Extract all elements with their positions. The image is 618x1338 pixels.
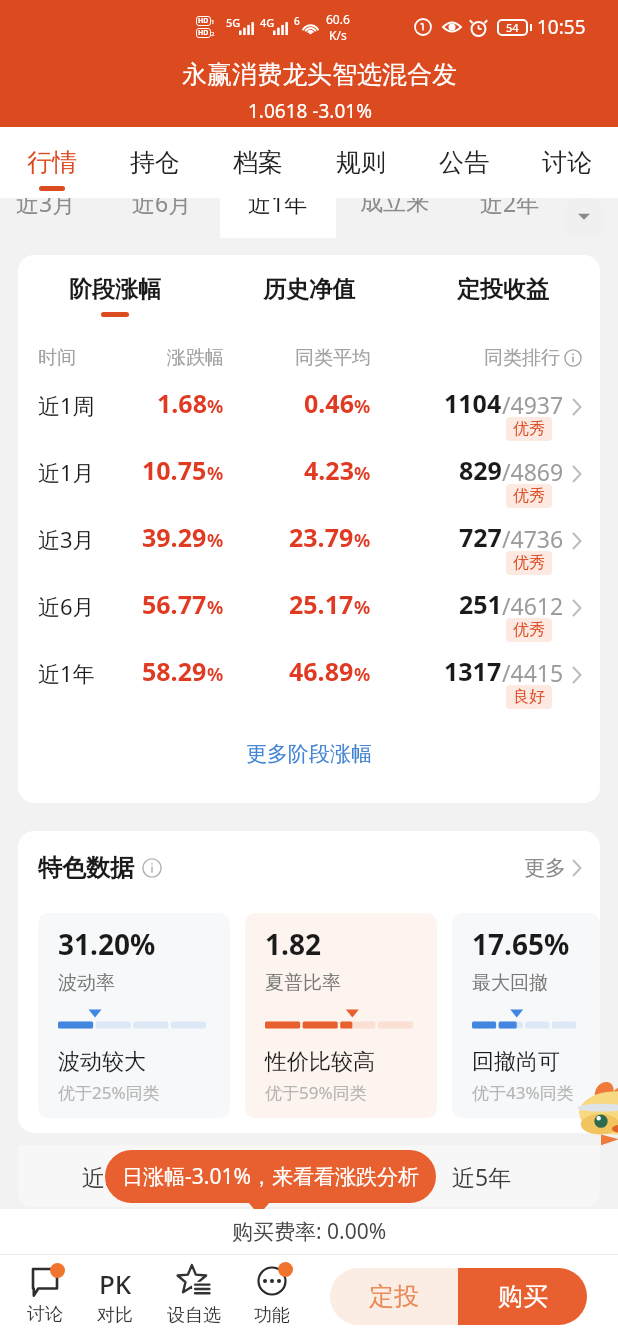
staticText: 近1年 (248, 187, 308, 218)
staticText: /4415 (502, 657, 564, 688)
staticText: 定投收益 (457, 275, 549, 304)
staticText: % (354, 595, 371, 620)
button[interactable]: 行情 (0, 127, 103, 198)
button[interactable]: 定投收益 (406, 275, 600, 317)
staticText: 优秀 (513, 620, 545, 640)
staticText: 公告 (439, 147, 489, 178)
staticText: 10.75 (142, 453, 207, 487)
staticText: 夏普比率 (265, 971, 341, 995)
button[interactable]: PK (77, 1254, 153, 1338)
staticText: 23.79 (289, 520, 354, 554)
staticText: /4937 (502, 389, 564, 420)
button[interactable]: 近3月 (0, 166, 104, 238)
button[interactable]: 日涨幅-3.01%，来看看涨跌分析 (105, 1150, 436, 1203)
button[interactable]: 近1年 (220, 166, 336, 238)
button[interactable]: 阶段涨幅 (18, 275, 212, 317)
staticText: 近4年 (210, 1161, 270, 1192)
staticText: 特色数据 (38, 853, 134, 883)
staticText: 波动率 (58, 971, 115, 995)
button[interactable]: Back (20, 123, 64, 167)
staticText: 时间 (38, 346, 128, 370)
button[interactable]: 近5年 (424, 1145, 540, 1207)
staticText: % (354, 662, 371, 687)
staticText: 涨跌幅 (128, 346, 224, 370)
button[interactable]: 讨论 (7, 1254, 83, 1338)
button[interactable]: 规则 (309, 127, 412, 198)
button[interactable]: 1.82 (245, 913, 437, 1118)
button[interactable]: 购买 (458, 1268, 587, 1325)
staticText: 近1年 (38, 658, 128, 688)
staticText: 1.68 (157, 386, 207, 420)
button[interactable]: 设自选 (156, 1254, 232, 1338)
staticText: 0.46 (304, 386, 354, 420)
staticText: 2 (211, 30, 215, 38)
button[interactable]: 历史净值 (212, 275, 406, 317)
button[interactable]: 近3月 (18, 509, 600, 576)
button[interactable]: 近2年 (452, 166, 568, 238)
button[interactable]: 公告 (412, 127, 515, 198)
staticText: % (207, 595, 224, 620)
button[interactable]: 近1年 (18, 643, 600, 710)
staticText: 近3年 (82, 1161, 142, 1192)
button[interactable]: 近1周 (18, 375, 600, 442)
staticText: 5G (226, 15, 241, 30)
button[interactable]: More ranges (562, 197, 606, 237)
staticText: 购买费率: 0.00% (232, 1217, 387, 1246)
button[interactable]: 成立来 (336, 166, 452, 238)
staticText: 1.0618 -3.01% (248, 98, 372, 124)
staticText: 4G (260, 15, 275, 30)
staticText: 历史净值 (263, 275, 355, 304)
button[interactable]: 讨论 (515, 127, 618, 198)
button[interactable]: 定投 (330, 1268, 458, 1325)
staticText: 行情 (27, 147, 77, 178)
staticText: 56.77 (142, 587, 207, 621)
staticText: 近1周 (38, 390, 128, 420)
staticText: 优于59%同类 (265, 1081, 367, 1104)
staticText: 54 (506, 20, 519, 35)
staticText: 持仓 (130, 147, 180, 178)
staticText: 727 (459, 520, 502, 554)
staticText: 性价比较高 (265, 1048, 375, 1076)
staticText: /4736 (502, 523, 564, 554)
staticText: /4869 (502, 456, 564, 487)
staticText: 同类平均 (224, 346, 371, 370)
staticText: 1104 (444, 386, 502, 420)
staticText: 6 (294, 14, 300, 28)
button[interactable]: 近4年 (182, 1145, 298, 1207)
button[interactable]: 档案 (206, 127, 309, 198)
button[interactable]: 近3年 (54, 1145, 170, 1207)
staticText: % (207, 461, 224, 486)
staticText: 近3月 (16, 187, 76, 218)
staticText: 近5年0 (332, 1161, 405, 1192)
staticText: 良好 (513, 687, 545, 707)
staticText: HD (198, 28, 209, 38)
staticText: /4612 (502, 590, 564, 621)
button[interactable]: 持仓 (103, 127, 206, 198)
staticText: 1317 (444, 654, 502, 688)
staticText: PK (99, 1266, 132, 1296)
button[interactable]: 近1月 (18, 442, 600, 509)
staticText: 近3月 (38, 524, 128, 554)
staticText: 同类排行 (484, 346, 560, 370)
button[interactable]: 31.20% (38, 913, 230, 1118)
staticText: 60.6 (326, 11, 350, 27)
button[interactable]: Share (553, 124, 597, 168)
staticText: 39.29 (142, 520, 207, 554)
button[interactable]: 功能 (234, 1254, 310, 1338)
button[interactable]: 近6月 (104, 166, 220, 238)
staticText: 46.89 (289, 654, 354, 688)
staticText: 设自选 (167, 1304, 221, 1327)
staticText: % (207, 528, 224, 553)
staticText: 规则 (336, 147, 386, 178)
button[interactable]: 更多阶段涨幅 (18, 738, 600, 770)
staticText: 58.29 (142, 654, 207, 688)
staticText: % (207, 394, 224, 419)
button[interactable]: 更多 (524, 855, 582, 881)
staticText: 优秀 (513, 486, 545, 506)
staticText: 档案 (233, 147, 283, 178)
button[interactable]: 17.65% (452, 913, 600, 1118)
button[interactable]: 近6月 (18, 576, 600, 643)
button[interactable]: 近5年0 (310, 1145, 426, 1207)
staticText: 优于43%同类 (472, 1081, 574, 1104)
staticText: 成立来 (360, 188, 429, 217)
